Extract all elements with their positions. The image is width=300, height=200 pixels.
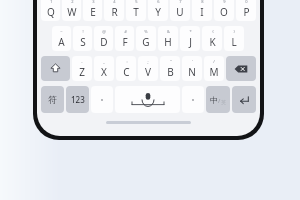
button[interactable]: 2	[62, 0, 81, 21]
staticText: K	[209, 35, 216, 49]
staticText: M	[209, 65, 219, 79]
staticText: )	[233, 29, 235, 34]
staticText: 4	[113, 0, 116, 4]
button[interactable]: 8	[192, 0, 212, 21]
staticText: 5	[135, 0, 138, 4]
button[interactable]: *	[180, 26, 200, 51]
staticText: 123	[71, 94, 85, 105]
button[interactable]: (	[202, 26, 222, 51]
staticText: X	[101, 65, 107, 79]
button[interactable]: 5	[126, 0, 146, 21]
staticText: L	[231, 35, 237, 49]
button[interactable]: 6	[148, 0, 168, 21]
button[interactable]: 1	[41, 0, 60, 21]
staticText: "	[170, 59, 172, 64]
staticText: T	[133, 5, 139, 19]
staticText: J	[189, 35, 192, 49]
button[interactable]: #	[115, 26, 134, 51]
button[interactable]: Shift	[41, 56, 70, 81]
staticText: ;	[147, 59, 149, 64]
button[interactable]: ;	[138, 56, 158, 81]
staticText: /	[213, 59, 215, 64]
staticText: A	[58, 35, 65, 49]
button[interactable]: %	[136, 26, 156, 51]
staticText: B	[167, 65, 174, 79]
staticText: O	[220, 5, 228, 19]
staticText: Q	[47, 5, 55, 19]
button[interactable]: 3	[83, 0, 102, 21]
button[interactable]: !	[73, 26, 92, 51]
staticText: W	[67, 5, 77, 19]
staticText: 8	[201, 0, 204, 4]
staticText: D	[100, 35, 108, 49]
staticText: 1	[50, 0, 53, 4]
staticText: 中	[210, 95, 218, 105]
staticText: !	[82, 29, 84, 34]
staticText: :	[126, 59, 128, 64]
staticText: -	[81, 59, 83, 64]
staticText: H	[164, 35, 172, 49]
staticText: N	[188, 65, 196, 79]
button[interactable]: 4	[104, 0, 124, 21]
button[interactable]: "	[160, 56, 180, 81]
staticText: 9	[223, 0, 226, 4]
staticText: F	[122, 35, 128, 49]
staticText: V	[145, 65, 151, 79]
button[interactable]: /	[204, 56, 224, 81]
staticText: 3	[92, 0, 95, 4]
button[interactable]: &	[158, 26, 178, 51]
button[interactable]: 7	[170, 0, 190, 21]
button[interactable]: 中	[206, 86, 230, 113]
staticText: @	[102, 29, 106, 34]
staticText: _	[103, 59, 105, 64]
staticText: *	[189, 29, 192, 34]
button[interactable]: 9	[214, 0, 234, 21]
staticText: &	[167, 29, 170, 34]
button[interactable]: '	[182, 56, 202, 81]
staticText: (	[212, 29, 214, 34]
button[interactable]: _	[94, 56, 114, 81]
button[interactable]: Punctuation	[182, 86, 204, 113]
staticText: S	[80, 35, 86, 49]
staticText: 0	[245, 0, 248, 4]
button[interactable]: 123	[66, 86, 89, 113]
button[interactable]: Backspace	[226, 56, 256, 81]
staticText: G	[142, 35, 150, 49]
staticText: P	[243, 5, 250, 19]
button[interactable]: Space, voice input	[115, 86, 180, 113]
button[interactable]: Enter	[232, 86, 256, 113]
staticText: 英	[221, 99, 226, 105]
button[interactable]: :	[116, 56, 136, 81]
staticText: I	[200, 5, 204, 19]
button[interactable]: ~	[52, 26, 71, 51]
staticText: Z	[79, 65, 85, 79]
button[interactable]: Punctuation	[91, 86, 113, 113]
staticText: %	[144, 29, 148, 34]
staticText: #	[124, 29, 127, 34]
staticText: 7	[179, 0, 182, 4]
staticText: ~	[60, 29, 63, 34]
button[interactable]: 0	[236, 0, 256, 21]
staticText: '	[192, 59, 193, 64]
button[interactable]: 符	[41, 86, 64, 113]
staticText: E	[90, 5, 96, 19]
staticText: 2	[71, 0, 74, 4]
button[interactable]: @	[94, 26, 113, 51]
staticText: /	[218, 97, 221, 105]
staticText: 6	[157, 0, 160, 4]
staticText: 符	[48, 94, 57, 105]
staticText: U	[176, 5, 184, 19]
staticText: R	[111, 5, 118, 19]
button[interactable]: )	[224, 26, 244, 51]
button[interactable]: -	[72, 56, 92, 81]
staticText: C	[123, 65, 130, 79]
staticText: Y	[155, 5, 161, 19]
